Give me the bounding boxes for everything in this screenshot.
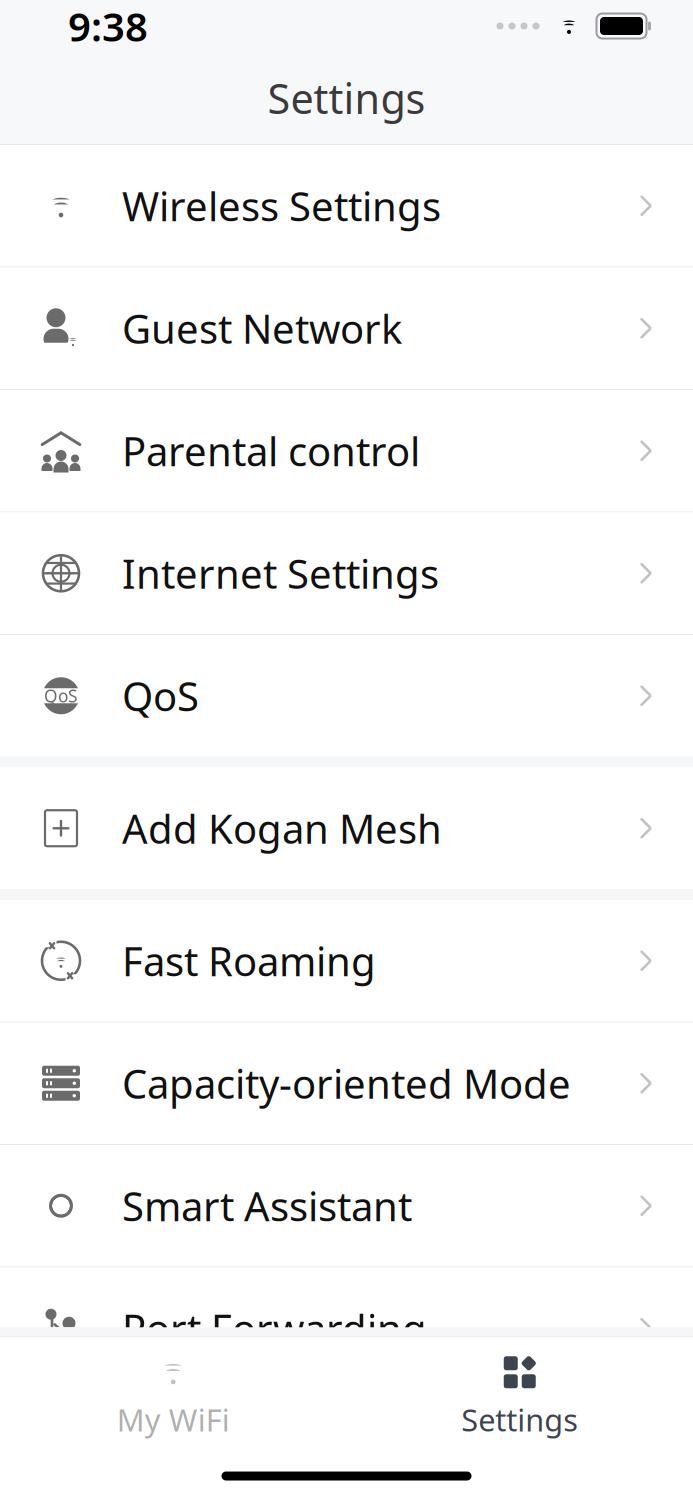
staticText: Settings bbox=[461, 1399, 578, 1440]
staticText: Smart Assistant bbox=[122, 1179, 412, 1232]
staticText: Guest Network bbox=[122, 302, 402, 355]
staticText: Parental control bbox=[122, 424, 420, 477]
button[interactable]: Capacity-oriented Mode bbox=[0, 1022, 693, 1144]
staticText: My WiFi bbox=[117, 1399, 230, 1440]
staticText: Settings bbox=[267, 71, 425, 125]
staticText: Fast Roaming bbox=[122, 934, 376, 987]
staticText: QoS bbox=[44, 684, 78, 707]
staticText: Internet Settings bbox=[122, 547, 439, 600]
button[interactable]: Port Forwarding bbox=[0, 1267, 693, 1389]
staticText: Port Forwarding bbox=[122, 1302, 427, 1355]
button[interactable]: QoS bbox=[0, 635, 693, 756]
button[interactable]: Settings bbox=[346, 1337, 693, 1452]
button[interactable]: Add Kogan Mesh bbox=[0, 767, 693, 889]
button[interactable]: Fast Roaming bbox=[0, 900, 693, 1021]
button[interactable]: My WiFi bbox=[0, 1337, 346, 1452]
staticText: Add Kogan Mesh bbox=[122, 802, 442, 855]
staticText: Wireless Settings bbox=[122, 179, 441, 232]
button[interactable]: Wireless Settings bbox=[0, 145, 693, 266]
button[interactable]: Smart Assistant bbox=[0, 1145, 693, 1266]
staticText: Capacity-oriented Mode bbox=[122, 1057, 571, 1110]
button[interactable]: Parental control bbox=[0, 390, 693, 511]
button[interactable]: Internet Settings bbox=[0, 512, 693, 634]
staticText: QoS bbox=[122, 669, 199, 722]
staticText: 9:38 bbox=[68, 0, 148, 52]
button[interactable]: Guest Network bbox=[0, 267, 693, 389]
